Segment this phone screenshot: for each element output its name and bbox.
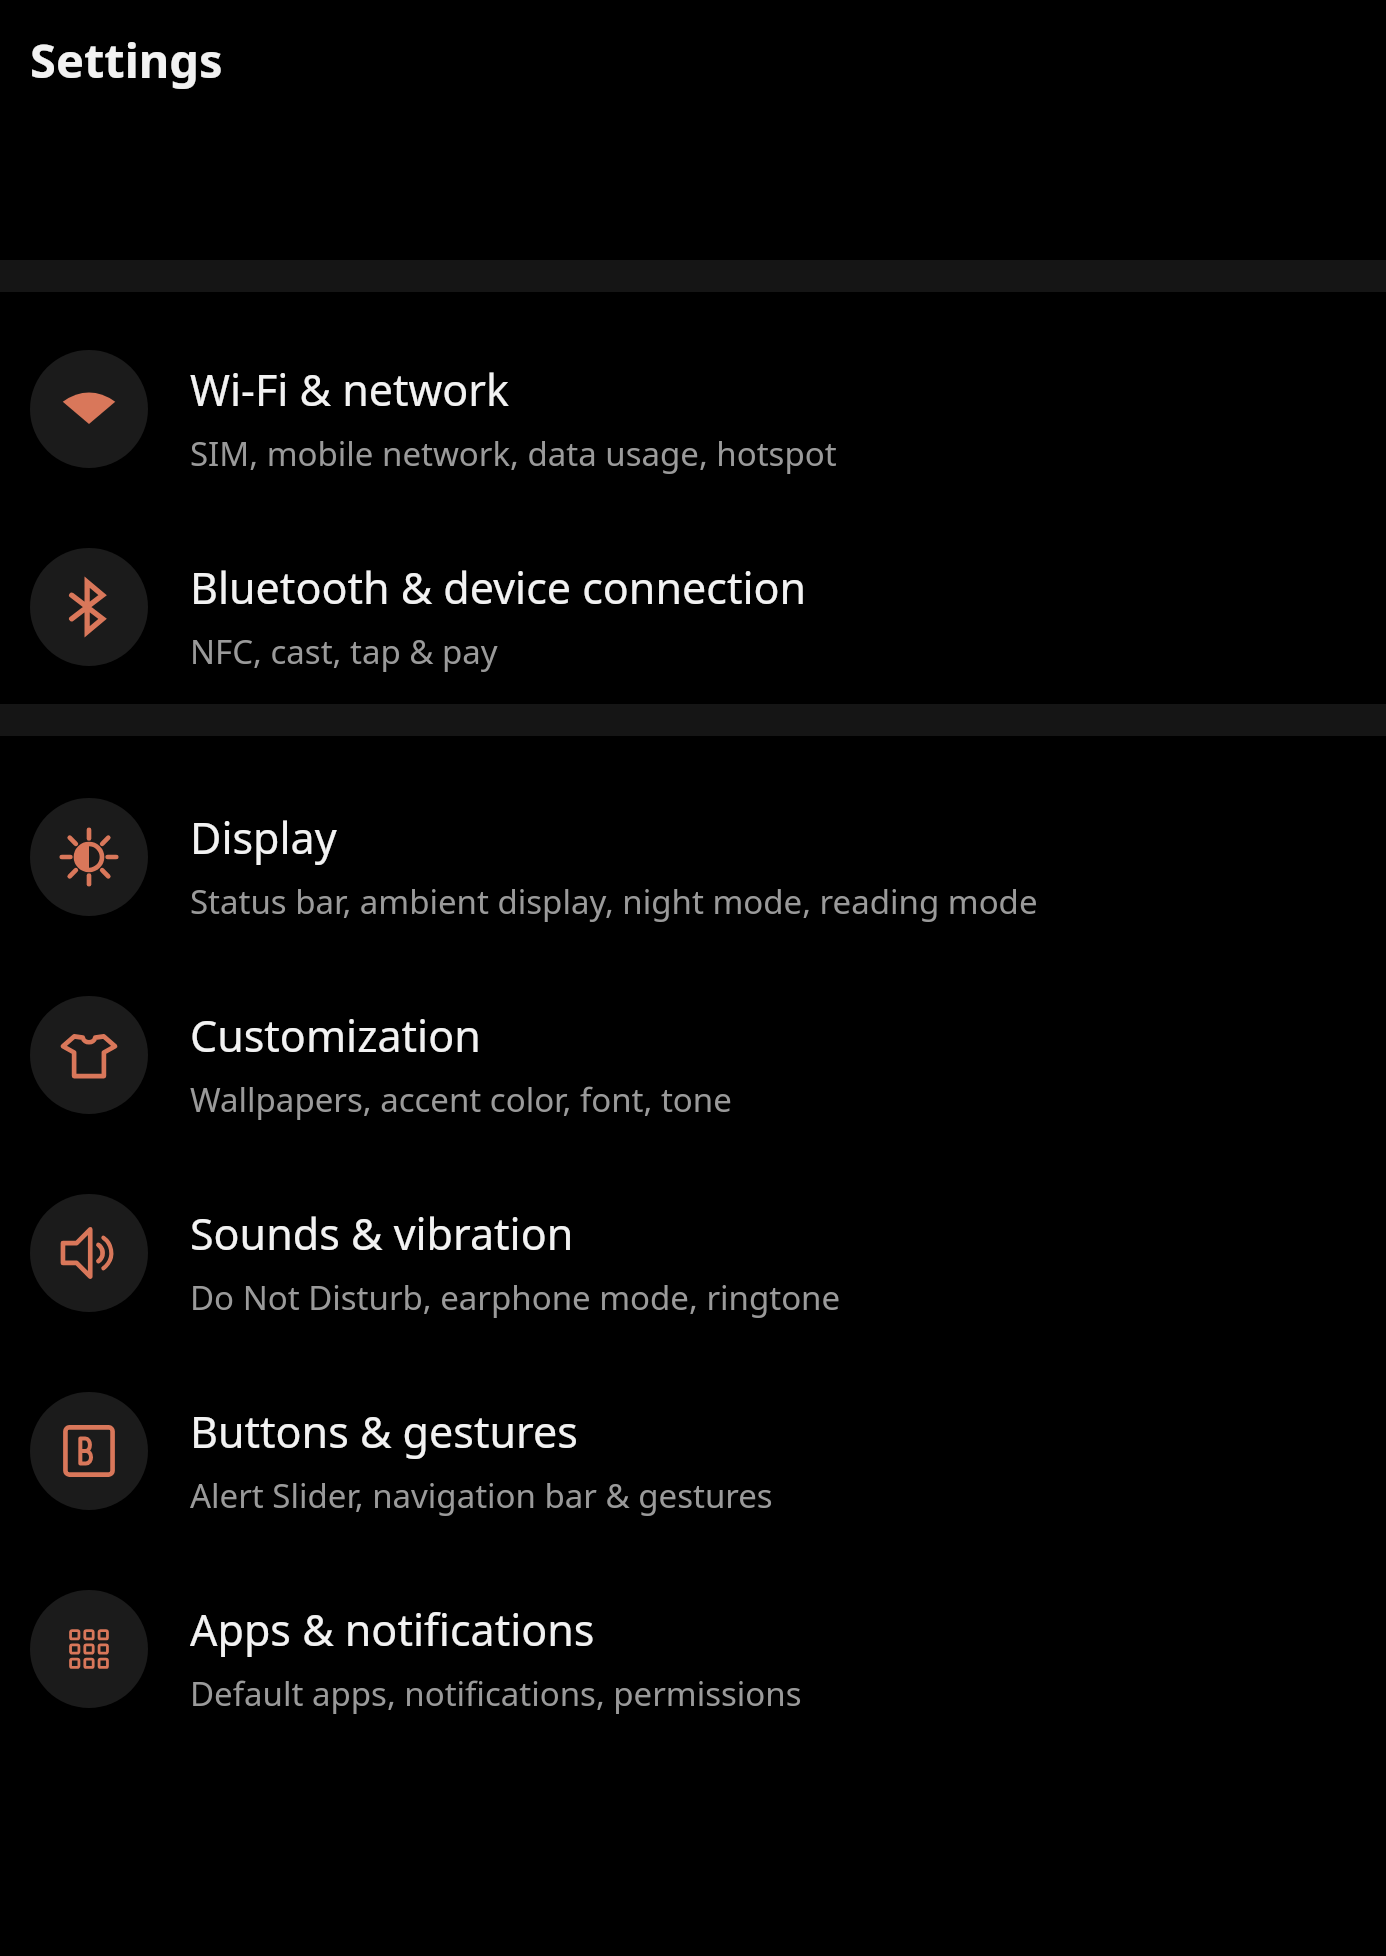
staticText: Default apps, notifications, permissions (190, 1671, 802, 1716)
staticText: SIM, mobile network, data usage, hotspot (190, 431, 837, 476)
staticText: Alert Slider, navigation bar & gestures (190, 1473, 773, 1518)
button[interactable]: Apps & notifications (0, 1518, 1386, 1716)
staticText: Display (190, 808, 337, 867)
staticText: Status bar, ambient display, night mode,… (190, 879, 1038, 924)
staticText: Settings (30, 28, 223, 92)
staticText: NFC, cast, tap & pay (190, 629, 498, 674)
staticText: Buttons & gestures (190, 1402, 578, 1461)
button[interactable]: Sounds & vibration (0, 1122, 1386, 1320)
button[interactable]: Customization (0, 924, 1386, 1122)
staticText: Wi-Fi & network (190, 360, 510, 419)
button[interactable]: Display (0, 736, 1386, 924)
staticText: Do Not Disturb, earphone mode, ringtone (190, 1275, 841, 1320)
staticText: Wallpapers, accent color, font, tone (190, 1077, 732, 1122)
staticText: Customization (190, 1006, 481, 1065)
staticText: Apps & notifications (190, 1600, 595, 1659)
button[interactable]: Wi-Fi & network (0, 292, 1386, 476)
staticText: Sounds & vibration (190, 1204, 574, 1263)
staticText: Bluetooth & device connection (190, 558, 807, 617)
button[interactable]: Buttons & gestures (0, 1320, 1386, 1518)
button[interactable]: Bluetooth & device connection (0, 476, 1386, 674)
